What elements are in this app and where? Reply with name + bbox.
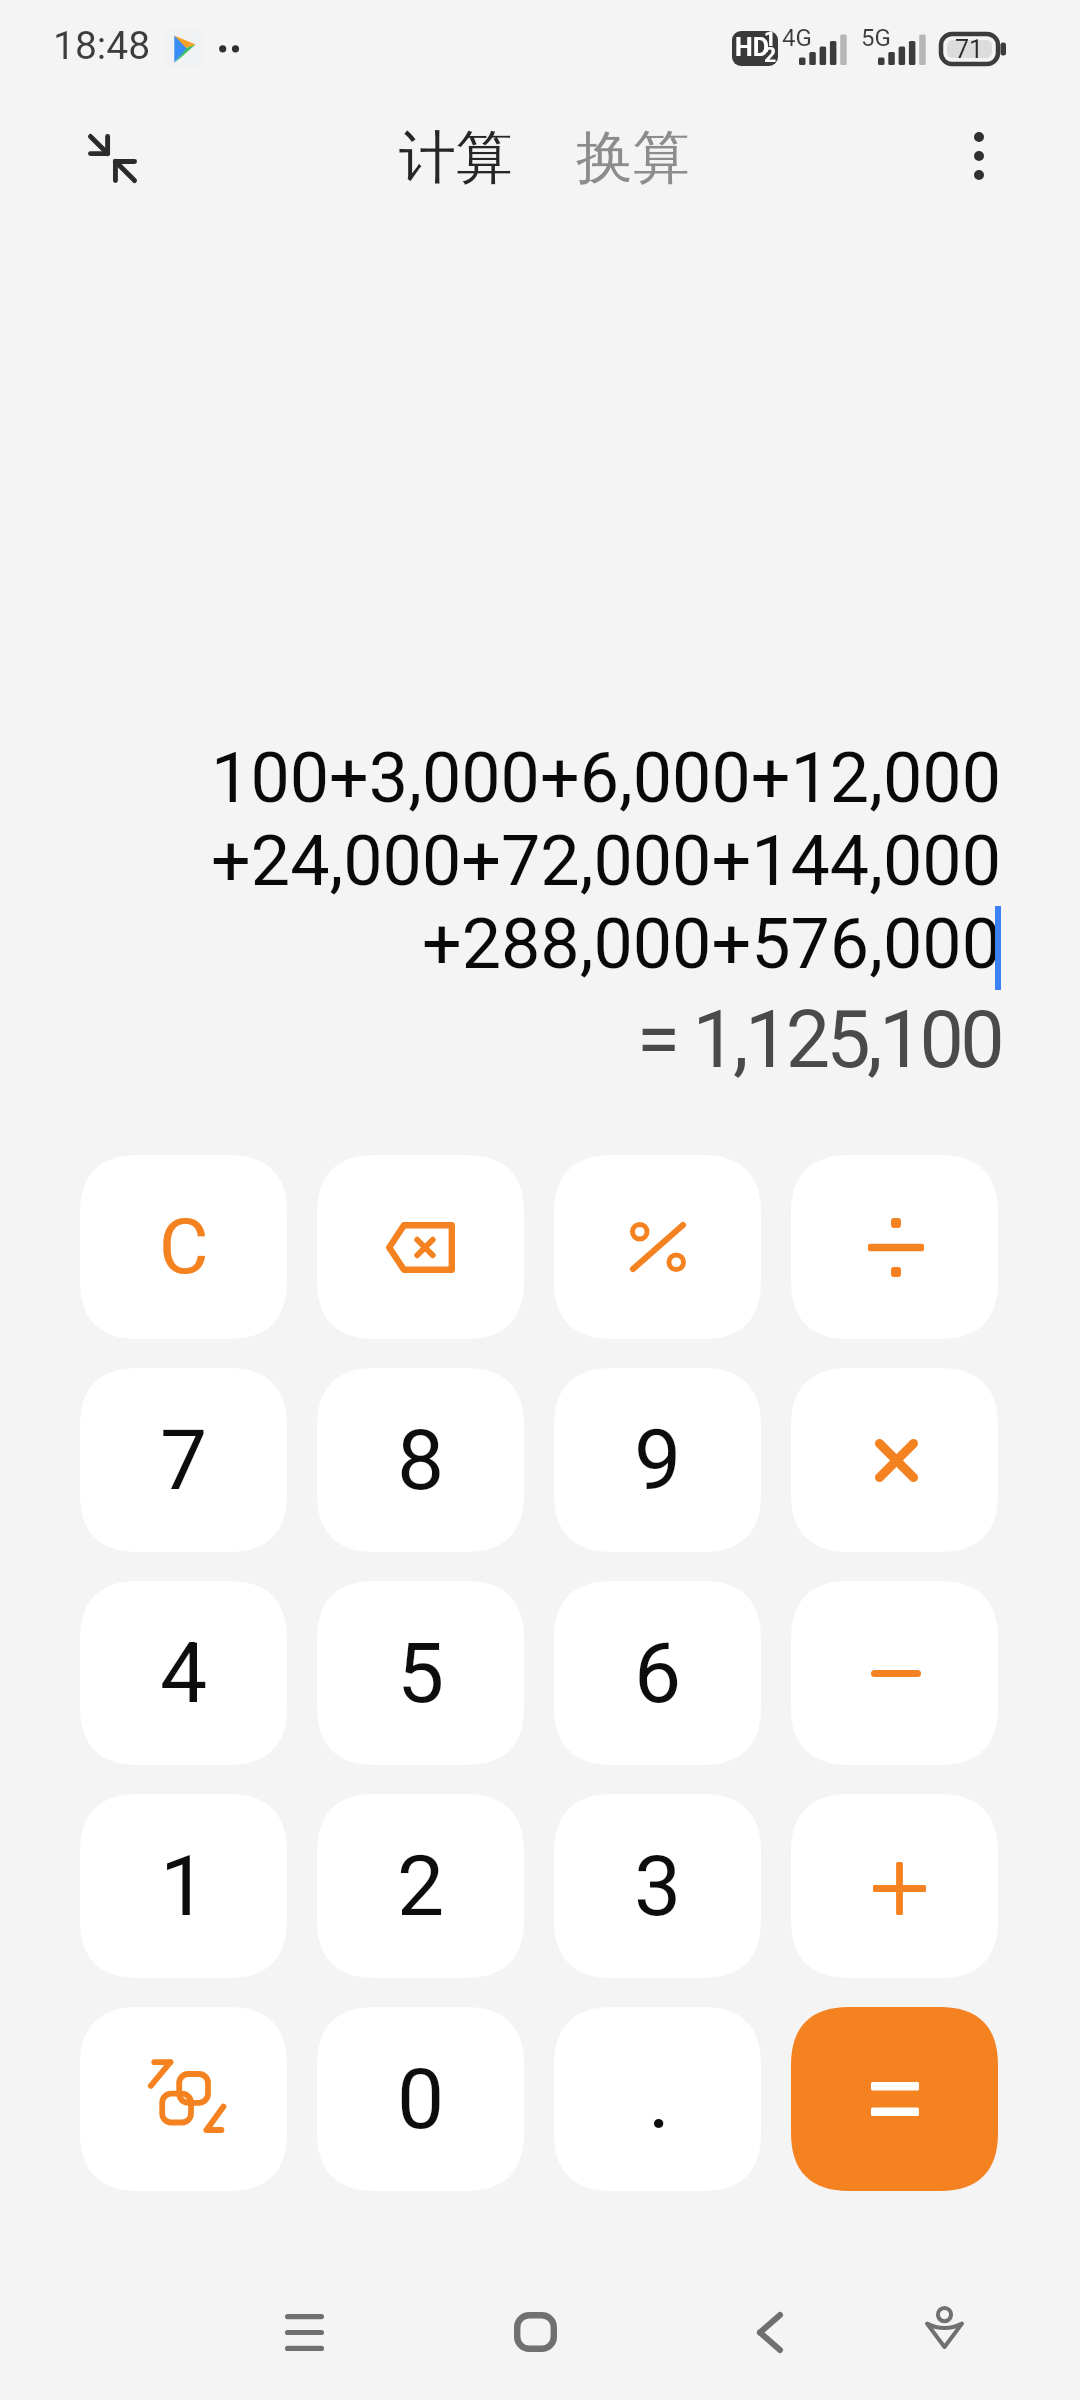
staticText: 4G <box>782 24 812 52</box>
button[interactable]: . <box>554 2007 761 2191</box>
staticText: 计算 <box>399 122 513 194</box>
button[interactable]: Recents <box>248 2277 358 2387</box>
staticText: 8 <box>397 1411 445 1509</box>
button[interactable]: Back <box>715 2277 825 2387</box>
button[interactable]: Unit conversion <box>80 2007 287 2191</box>
button[interactable]: C <box>80 1155 287 1339</box>
button[interactable]: 7 <box>80 1368 287 1552</box>
button[interactable]: Multiply <box>791 1368 998 1552</box>
button[interactable]: Home <box>480 2277 590 2387</box>
staticText: C <box>159 1202 209 1291</box>
button[interactable]: Equals <box>791 2007 998 2191</box>
button[interactable]: 8 <box>317 1368 524 1552</box>
button[interactable]: 9 <box>554 1368 761 1552</box>
button[interactable]: More options <box>938 115 1020 197</box>
button[interactable]: Plus <box>791 1794 998 1978</box>
staticText: 100+3,000+6,000+12,000 +24,000+72,000+14… <box>211 737 1001 985</box>
staticText: 2 <box>764 43 777 66</box>
button[interactable]: Percent <box>554 1155 761 1339</box>
staticText: 4 <box>160 1624 208 1722</box>
button[interactable]: Minus <box>791 1581 998 1765</box>
staticText: 6 <box>634 1624 682 1722</box>
staticText: 0 <box>397 2050 445 2148</box>
staticText: 9 <box>634 1411 682 1509</box>
button[interactable]: Collapse <box>67 113 157 203</box>
staticText: 2 <box>397 1837 445 1935</box>
staticText: HD <box>735 33 769 62</box>
button[interactable]: 计算 <box>387 114 525 202</box>
button[interactable]: 0 <box>317 2007 524 2191</box>
staticText: 71 <box>955 35 984 64</box>
button[interactable]: Assistant <box>889 2273 999 2383</box>
button[interactable]: 5 <box>317 1581 524 1765</box>
button[interactable]: 3 <box>554 1794 761 1978</box>
button[interactable]: 换算 <box>564 114 702 202</box>
button[interactable]: 6 <box>554 1581 761 1765</box>
staticText: 7 <box>160 1411 208 1509</box>
staticText: 3 <box>634 1837 682 1935</box>
staticText: = 1,125,100 <box>636 994 1001 1087</box>
staticText: 5G <box>861 24 891 52</box>
button[interactable]: 1 <box>80 1794 287 1978</box>
staticText: 换算 <box>576 122 690 194</box>
staticText: 18:48 <box>53 23 151 69</box>
button[interactable]: Delete <box>317 1155 524 1339</box>
button[interactable]: Divide <box>791 1155 998 1339</box>
staticText: 5 <box>397 1624 445 1722</box>
button[interactable]: 2 <box>317 1794 524 1978</box>
button[interactable]: 4 <box>80 1581 287 1765</box>
staticText: . <box>648 2050 671 2148</box>
staticText: 1 <box>160 1837 208 1935</box>
staticText: 1 <box>764 31 777 52</box>
